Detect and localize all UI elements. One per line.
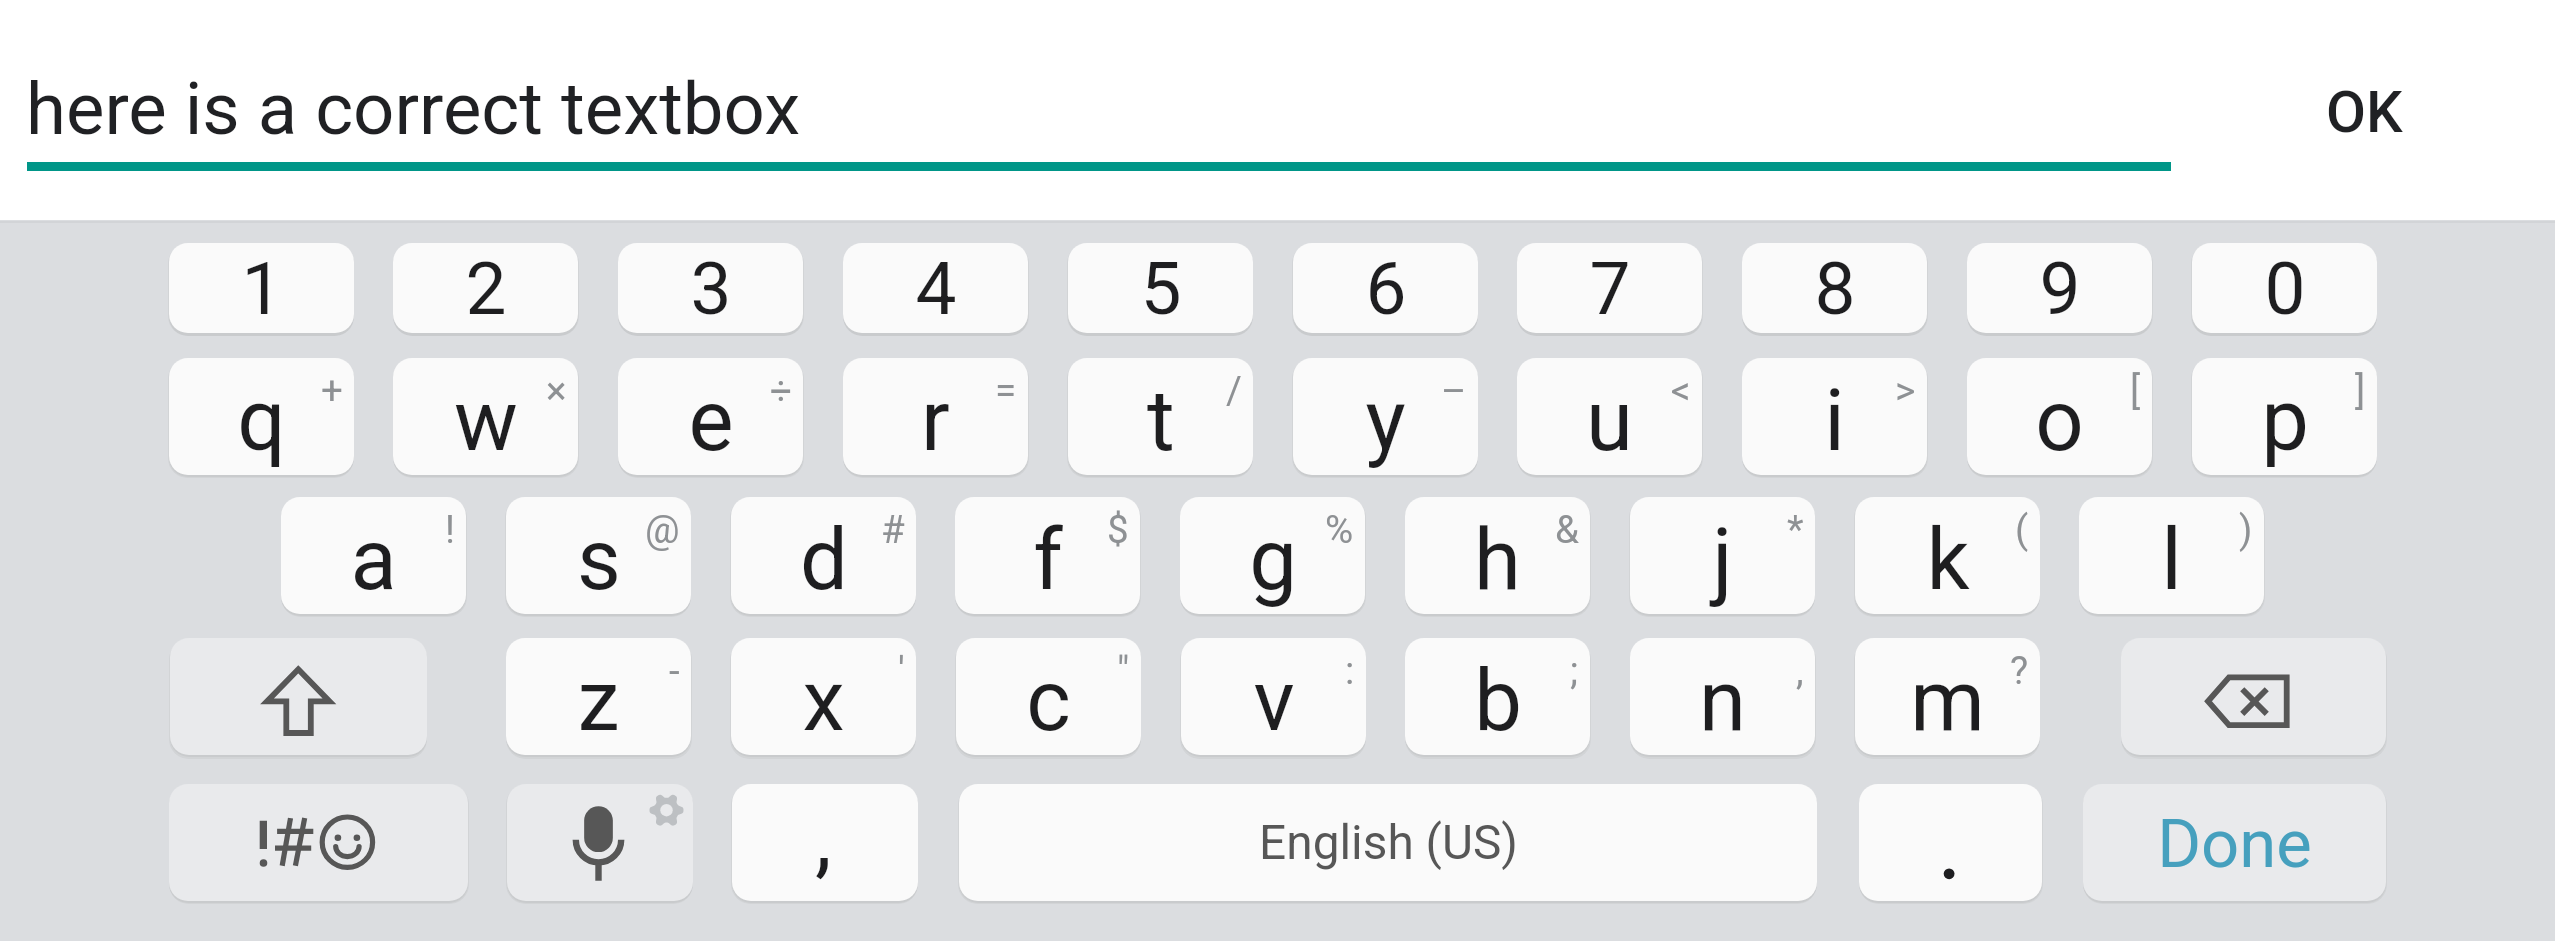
- button[interactable]: l: [2079, 497, 2264, 614]
- staticText: s: [577, 510, 621, 610]
- button[interactable]: 4: [843, 243, 1028, 333]
- staticText: i: [1824, 371, 1845, 471]
- staticText: @: [645, 507, 680, 552]
- button[interactable]: 0: [2192, 243, 2377, 333]
- staticText: =: [995, 368, 1017, 413]
- button[interactable]: k: [1855, 497, 2040, 614]
- staticText: *: [1787, 507, 1804, 552]
- staticText: ×: [546, 368, 567, 413]
- staticText: 5: [1140, 246, 1182, 332]
- staticText: c: [1026, 651, 1071, 751]
- staticText: d: [800, 510, 848, 610]
- button[interactable]: d: [731, 497, 916, 614]
- staticText: OK: [2326, 78, 2403, 146]
- staticText: g: [1249, 510, 1297, 610]
- button[interactable]: i: [1742, 358, 1927, 475]
- button[interactable]: t: [1068, 358, 1253, 475]
- staticText: ?: [2010, 648, 2029, 693]
- staticText: b: [1474, 651, 1522, 751]
- button[interactable]: 5: [1068, 243, 1253, 333]
- button[interactable]: 6: [1293, 243, 1478, 333]
- staticText: &: [1555, 507, 1579, 552]
- button[interactable]: Backspace: [2121, 638, 2386, 755]
- button[interactable]: f: [955, 497, 1140, 614]
- button[interactable]: b: [1405, 638, 1590, 755]
- button[interactable]: o: [1967, 358, 2152, 475]
- staticText: 2: [465, 246, 507, 332]
- button[interactable]: h: [1405, 497, 1590, 614]
- staticText: k: [1926, 510, 1970, 610]
- staticText: (: [2015, 507, 2029, 552]
- button[interactable]: p: [2192, 358, 2377, 475]
- button[interactable]: a: [281, 497, 466, 614]
- staticText: 6: [1365, 246, 1407, 332]
- staticText: 8: [1814, 246, 1856, 332]
- staticText: 9: [2039, 246, 2081, 332]
- button[interactable]: ,: [732, 784, 918, 901]
- staticText: 3: [690, 246, 732, 332]
- button[interactable]: 1: [169, 243, 354, 333]
- staticText: here is a correct textbox: [26, 67, 801, 152]
- staticText: –: [1441, 368, 1467, 413]
- staticText: -: [669, 648, 680, 693]
- button[interactable]: here is a correct textbox: [27, 20, 2171, 172]
- button[interactable]: Voice input: [507, 784, 693, 901]
- button[interactable]: Symbols and emoji: [169, 784, 468, 901]
- button[interactable]: OK: [2244, 42, 2484, 182]
- button[interactable]: 8: [1742, 243, 1927, 333]
- staticText: h: [1474, 510, 1521, 610]
- staticText: y: [1365, 371, 1406, 471]
- staticText: t: [1147, 371, 1175, 471]
- button[interactable]: j: [1630, 497, 1815, 614]
- staticText: 0: [2264, 246, 2306, 332]
- staticText: q: [237, 371, 286, 471]
- button[interactable]: z: [506, 638, 691, 755]
- button[interactable]: x: [731, 638, 916, 755]
- button[interactable]: e: [618, 358, 803, 475]
- staticText: o: [2035, 371, 2084, 471]
- button[interactable]: u: [1517, 358, 1702, 475]
- button[interactable]: w: [393, 358, 578, 475]
- button[interactable]: Done: [2083, 784, 2386, 901]
- staticText: $: [1107, 507, 1129, 552]
- staticText: ': [898, 648, 905, 693]
- button[interactable]: English (US): [959, 784, 1817, 901]
- staticText: /: [1226, 368, 1242, 413]
- staticText: r: [921, 371, 950, 471]
- staticText: n: [1699, 651, 1746, 751]
- button[interactable]: 7: [1517, 243, 1702, 333]
- staticText: f: [1033, 510, 1063, 610]
- staticText: p: [2261, 371, 2309, 471]
- button[interactable]: v: [1181, 638, 1366, 755]
- button[interactable]: n: [1630, 638, 1815, 755]
- button[interactable]: q: [169, 358, 354, 475]
- staticText: a: [350, 510, 397, 610]
- staticText: ,: [815, 788, 832, 888]
- button[interactable]: 9: [1967, 243, 2152, 333]
- button[interactable]: Period: [1859, 784, 2042, 901]
- staticText: :: [1345, 648, 1355, 693]
- staticText: w: [454, 371, 518, 471]
- staticText: 4: [915, 246, 957, 332]
- staticText: 1: [241, 246, 283, 332]
- staticText: [: [2130, 368, 2141, 413]
- button[interactable]: s: [506, 497, 691, 614]
- staticText: ": [1117, 648, 1130, 693]
- staticText: %: [1325, 507, 1354, 552]
- staticText: m: [1910, 651, 1985, 751]
- staticText: #: [881, 507, 905, 552]
- button[interactable]: r: [843, 358, 1028, 475]
- button[interactable]: 3: [618, 243, 803, 333]
- button[interactable]: c: [956, 638, 1141, 755]
- staticText: 7: [1589, 246, 1631, 332]
- staticText: <: [1671, 368, 1691, 413]
- staticText: !: [445, 507, 455, 552]
- button[interactable]: m: [1855, 638, 2040, 755]
- staticText: ,: [1796, 648, 1804, 693]
- button[interactable]: Shift: [170, 638, 427, 755]
- button[interactable]: g: [1180, 497, 1365, 614]
- staticText: ): [2239, 507, 2253, 552]
- staticText: z: [577, 651, 620, 751]
- button[interactable]: y: [1293, 358, 1478, 475]
- button[interactable]: 2: [393, 243, 578, 333]
